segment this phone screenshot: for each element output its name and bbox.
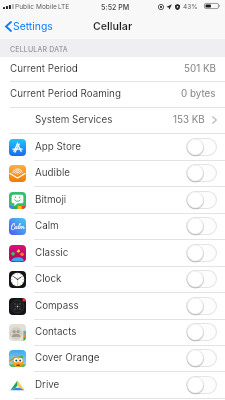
- staticText: 5:52 PM: [101, 3, 130, 11]
- staticText: Cover Orange: [35, 352, 100, 364]
- staticText: App Store: [35, 141, 82, 153]
- button[interactable]: Bitmoji: [0, 187, 225, 213]
- button[interactable]: Toggle cellular data for app: [186, 323, 217, 341]
- staticText: 0 bytes: [181, 88, 216, 100]
- staticText: Classic: [35, 247, 69, 259]
- button[interactable]: Toggle cellular data for app: [186, 191, 217, 209]
- button[interactable]: Toggle cellular data for app: [186, 164, 217, 182]
- staticText: 153 KB: [173, 114, 205, 126]
- button[interactable]: App Store: [0, 134, 225, 160]
- button[interactable]: Audible: [0, 160, 225, 186]
- staticText: CELLULAR DATA: [10, 45, 68, 53]
- staticText: 43%: [183, 3, 198, 11]
- button[interactable]: Toggle cellular data for app: [186, 349, 217, 367]
- staticText: Clock: [35, 273, 62, 285]
- button[interactable]: System Services: [0, 107, 225, 133]
- button[interactable]: Cover Orange: [0, 345, 225, 371]
- staticText: Bitmoji: [35, 194, 67, 206]
- button[interactable]: Toggle cellular data for app: [186, 297, 217, 315]
- button[interactable]: Calm: [0, 213, 225, 239]
- button[interactable]: Drive: [0, 372, 225, 398]
- staticText: 501 KB: [184, 63, 216, 75]
- button[interactable]: Clock: [0, 266, 225, 292]
- staticText: System Services: [35, 114, 113, 126]
- staticText: LTE: [58, 3, 70, 11]
- staticText: Audible: [35, 167, 71, 179]
- button[interactable]: Compass: [0, 293, 225, 319]
- staticText: Compass: [35, 300, 79, 312]
- staticText: Cellular: [93, 20, 133, 33]
- staticText: Contacts: [35, 326, 77, 338]
- button[interactable]: Contacts: [0, 319, 225, 345]
- button[interactable]: Toggle cellular data for app: [186, 270, 217, 288]
- staticText: Drive: [35, 379, 60, 391]
- staticText: Settings: [13, 20, 53, 33]
- button[interactable]: Current Period: [0, 56, 225, 81]
- button[interactable]: Toggle cellular data for app: [186, 217, 217, 235]
- button[interactable]: Toggle cellular data for app: [186, 244, 217, 262]
- staticText: Public Mobile: [15, 3, 57, 11]
- button[interactable]: Classic: [0, 240, 225, 266]
- button[interactable]: Toggle cellular data for app: [186, 138, 217, 156]
- button[interactable]: Settings: [0, 14, 60, 39]
- staticText: Calm: [35, 220, 59, 232]
- button[interactable]: Toggle cellular data for app: [186, 376, 217, 394]
- staticText: Calm: [11, 222, 25, 231]
- staticText: Current Period Roaming: [10, 88, 121, 100]
- staticText: Current Period: [10, 63, 78, 75]
- button[interactable]: Current Period Roaming: [0, 81, 225, 107]
